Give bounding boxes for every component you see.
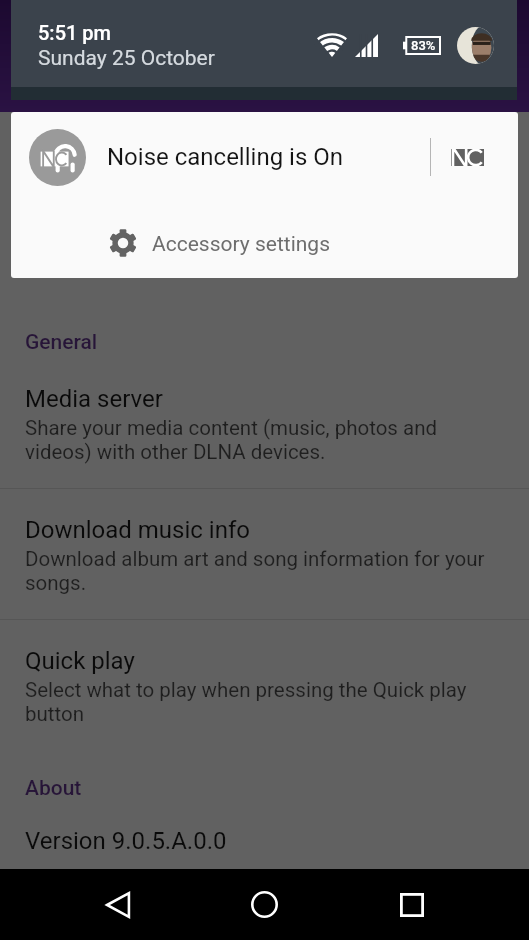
staticText: Accessory settings bbox=[152, 232, 330, 257]
staticText: Download album art and song information … bbox=[25, 547, 504, 595]
button[interactable]: Media server bbox=[0, 355, 529, 488]
button[interactable]: Profile bbox=[457, 27, 494, 64]
button[interactable]: Accessory settings bbox=[11, 202, 518, 278]
button[interactable]: Noise cancelling bbox=[431, 112, 518, 202]
staticText: 5:51 pm bbox=[38, 21, 112, 44]
button[interactable]: Back bbox=[44, 869, 191, 940]
staticText: Share your media content (music, photos … bbox=[25, 416, 504, 464]
staticText: Select what to play when pressing the Qu… bbox=[25, 678, 504, 726]
staticText: Quick play bbox=[25, 647, 135, 675]
button[interactable]: Noise cancelling is On bbox=[11, 112, 518, 202]
staticText: General bbox=[25, 330, 98, 355]
staticText: Media server bbox=[25, 385, 163, 413]
staticText: Version 9.0.5.A.0.0 bbox=[25, 827, 227, 855]
button[interactable]: Quick play bbox=[0, 620, 529, 750]
button[interactable]: Home bbox=[191, 869, 338, 940]
staticText: Noise cancelling is On bbox=[107, 143, 344, 171]
button[interactable]: Recents bbox=[338, 869, 485, 940]
button[interactable]: Download music info bbox=[0, 489, 529, 619]
staticText: 83% bbox=[411, 38, 436, 53]
staticText: Download music info bbox=[25, 516, 250, 544]
button[interactable]: Version 9.0.5.A.0.0 bbox=[0, 801, 529, 875]
staticText: Sunday 25 October bbox=[38, 46, 215, 71]
staticText: About bbox=[25, 776, 82, 801]
